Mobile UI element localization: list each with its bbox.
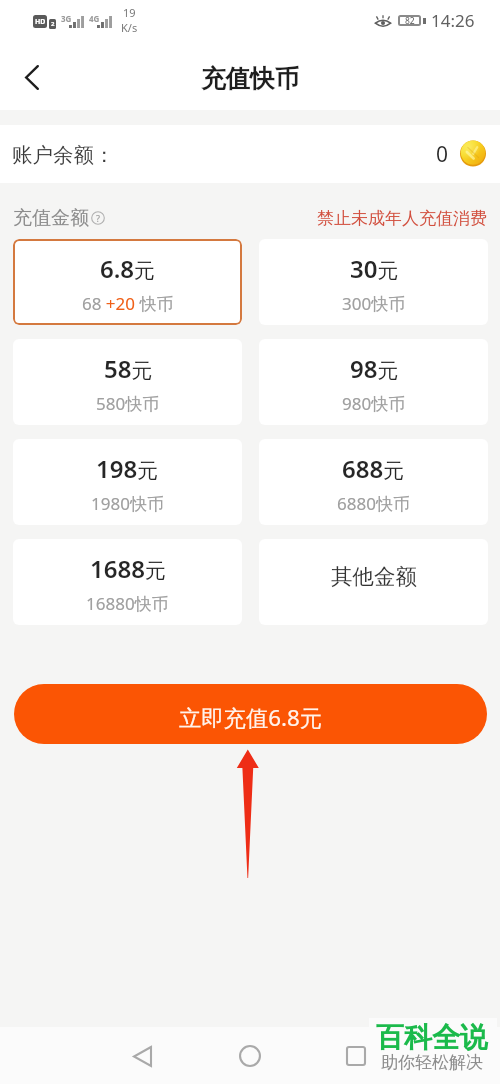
staticText: 688元 xyxy=(342,452,405,485)
button[interactable]: 6.8元 xyxy=(13,239,242,325)
staticText: HD xyxy=(35,17,46,27)
button[interactable]: Back xyxy=(10,55,54,99)
button[interactable]: Home xyxy=(226,1032,274,1080)
staticText: 68 +20 快币 xyxy=(82,292,174,315)
staticText: 6880快币 xyxy=(337,492,410,515)
staticText: 980快币 xyxy=(342,392,406,415)
staticText: K/s xyxy=(121,20,138,35)
staticText: 助你轻松解决 xyxy=(381,1052,483,1073)
button[interactable]: 198元 xyxy=(13,439,242,525)
staticText: 300快币 xyxy=(342,292,406,315)
staticText: 30元 xyxy=(350,252,399,285)
staticText: 6.8元 xyxy=(100,252,156,285)
staticText: 19 xyxy=(123,5,136,20)
staticText: 4G xyxy=(89,13,100,24)
staticText: 16880快币 xyxy=(86,592,169,615)
button[interactable]: 30元 xyxy=(259,239,488,325)
staticText: 禁止未成年人充值消费 xyxy=(317,208,487,229)
staticText: 1688元 xyxy=(90,552,166,585)
staticText: 580快币 xyxy=(96,392,160,415)
staticText: 充值金额 xyxy=(13,206,89,230)
button[interactable]: Recents xyxy=(332,1032,380,1080)
staticText: 14:26 xyxy=(431,9,475,32)
button[interactable]: 其他金额 xyxy=(259,539,488,625)
button[interactable]: 1688元 xyxy=(13,539,242,625)
staticText: 百科全说 xyxy=(376,1020,488,1055)
button[interactable]: 立即充值6.8元 xyxy=(14,684,487,744)
staticText: 立即充值6.8元 xyxy=(179,702,322,732)
staticText: 58元 xyxy=(104,352,153,385)
staticText: 充值快币 xyxy=(201,63,299,94)
staticText: 98元 xyxy=(350,352,399,385)
staticText: 其他金额 xyxy=(331,563,417,590)
staticText: 198元 xyxy=(96,452,159,485)
button[interactable]: Back xyxy=(118,1032,166,1080)
button[interactable]: 98元 xyxy=(259,339,488,425)
button[interactable]: 58元 xyxy=(13,339,242,425)
staticText: 0 xyxy=(436,140,449,169)
staticText: 3G xyxy=(61,13,72,24)
staticText: 账户余额： xyxy=(12,142,115,168)
staticText: 82 xyxy=(405,15,415,26)
staticText: ? xyxy=(96,212,101,224)
button[interactable]: 688元 xyxy=(259,439,488,525)
staticText: 1980快币 xyxy=(91,492,164,515)
staticText: 2 xyxy=(51,20,55,28)
